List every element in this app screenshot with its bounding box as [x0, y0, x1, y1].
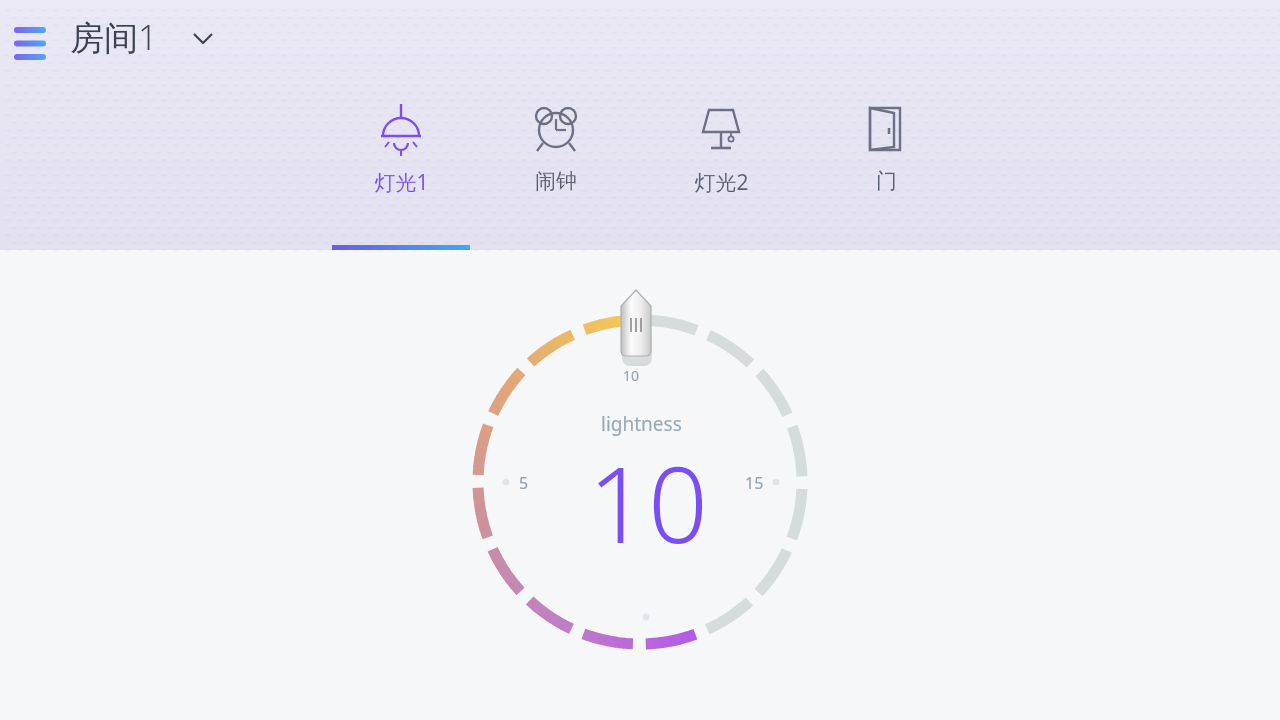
button[interactable]: 灯光2 [652, 100, 790, 250]
staticText: 15 [745, 472, 764, 494]
staticText: 灯光2 [694, 168, 749, 197]
button[interactable]: 门 [817, 100, 955, 250]
staticText: 房间1 [70, 14, 158, 60]
button[interactable]: Menu [6, 18, 54, 66]
button[interactable]: 房间1 [70, 14, 218, 60]
staticText: 闹钟 [535, 168, 577, 194]
staticText: 10 [588, 431, 708, 574]
staticText: 10 [623, 366, 640, 385]
staticText: lightness [601, 411, 682, 437]
staticText: 5 [519, 472, 529, 494]
button[interactable]: 闹钟 [487, 100, 625, 250]
staticText: 灯光1 [374, 168, 429, 197]
staticText: 门 [876, 168, 897, 194]
button[interactable]: 灯光1 [332, 100, 470, 250]
